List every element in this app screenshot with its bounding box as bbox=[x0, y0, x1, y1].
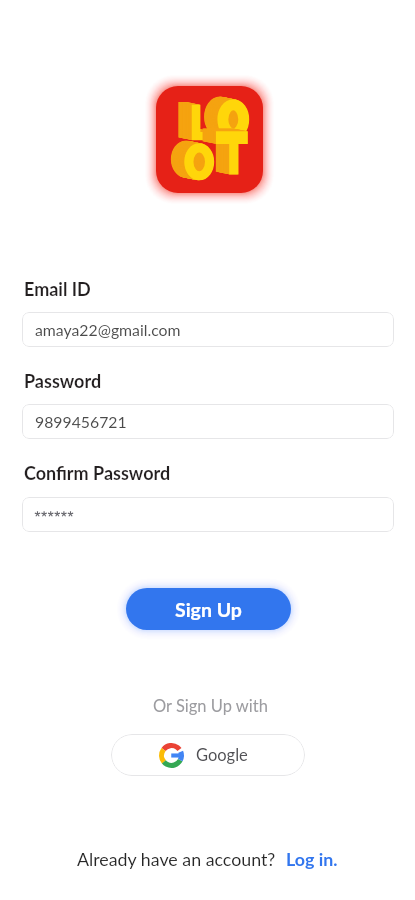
staticText: Password bbox=[24, 370, 102, 392]
button[interactable] bbox=[22, 497, 394, 532]
button[interactable]: Sign Up bbox=[126, 588, 291, 630]
staticText: Confirm Password bbox=[24, 462, 171, 484]
button[interactable]: Google bbox=[111, 734, 305, 776]
staticText: Email ID bbox=[24, 278, 91, 300]
staticText: Or Sign Up with bbox=[153, 696, 268, 716]
button[interactable]: 9899456721 bbox=[22, 404, 394, 439]
staticText: 9899456721 bbox=[35, 412, 127, 431]
button[interactable]: amaya22@gmail.com bbox=[22, 312, 394, 347]
staticText: Already have an account? bbox=[77, 848, 276, 869]
staticText: Sign Up bbox=[175, 598, 242, 621]
staticText: Log in. bbox=[286, 848, 338, 869]
staticText: amaya22@gmail.com bbox=[35, 320, 181, 339]
staticText: Google bbox=[196, 745, 248, 765]
button[interactable]: Log in. bbox=[286, 848, 338, 869]
